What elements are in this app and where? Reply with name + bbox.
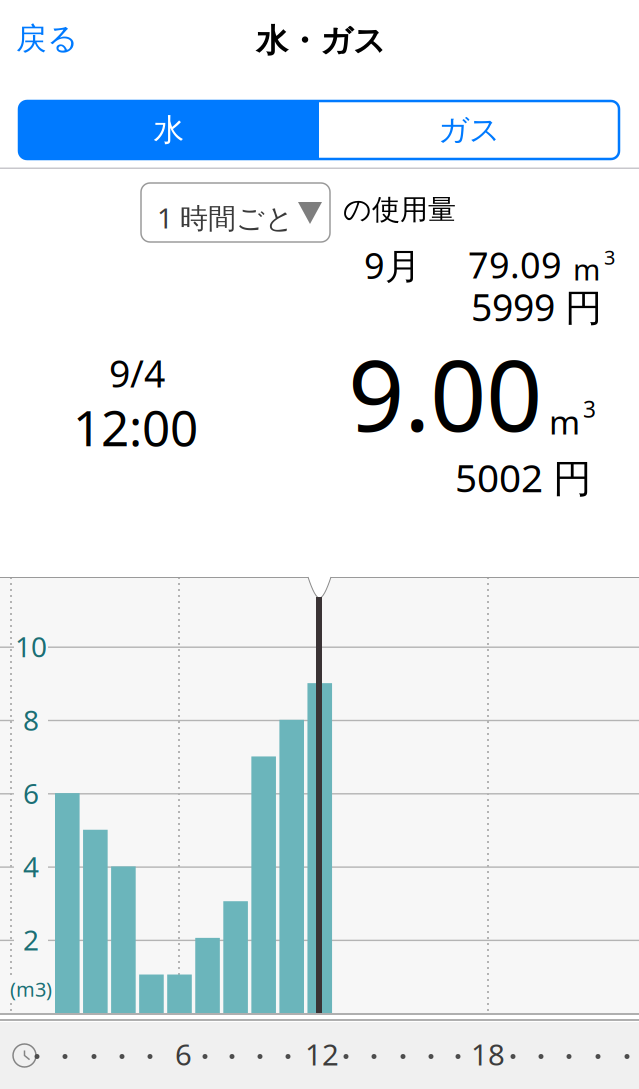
button[interactable]: 水: [19, 101, 319, 159]
staticText: m: [573, 250, 600, 289]
staticText: 5002 円: [455, 451, 592, 503]
staticText: 8: [23, 701, 39, 738]
staticText: 10: [15, 628, 47, 665]
staticText: 3: [604, 244, 615, 270]
staticText: 3: [583, 394, 596, 424]
staticText: 1 時間ごと: [157, 199, 294, 236]
staticText: 79.09: [468, 241, 562, 288]
staticText: の使用量: [343, 192, 456, 227]
staticText: 9月: [364, 241, 421, 289]
staticText: 18: [471, 1035, 505, 1074]
staticText: 6: [175, 1035, 192, 1074]
staticText: 水・ガス: [256, 21, 386, 61]
staticText: 9/4: [109, 348, 165, 398]
staticText: 12: [305, 1035, 339, 1074]
staticText: 5999 円: [471, 282, 602, 331]
staticText: 9.00: [348, 328, 542, 459]
staticText: 戻る: [16, 20, 78, 57]
staticText: m: [549, 399, 580, 444]
staticText: 4: [23, 848, 39, 885]
staticText: (m3): [10, 976, 52, 1002]
button[interactable]: 戻る: [16, 19, 92, 59]
button[interactable]: ガス: [319, 101, 619, 159]
staticText: 2: [23, 921, 39, 958]
staticText: 12:00: [73, 394, 198, 460]
staticText: ガス: [438, 111, 500, 149]
button[interactable]: 1 時間ごと: [141, 183, 330, 242]
staticText: 水: [153, 111, 184, 149]
staticText: 6: [23, 774, 39, 812]
